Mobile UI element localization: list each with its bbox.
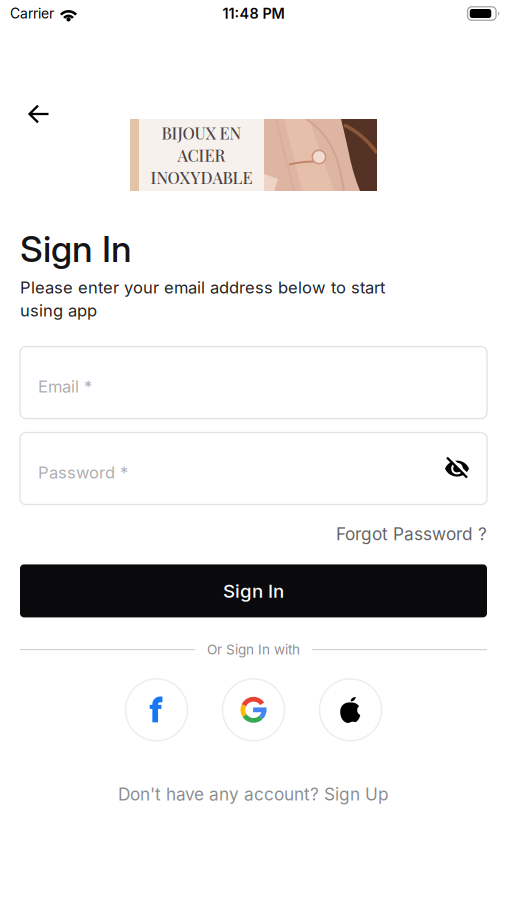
- staticText: Email *: [38, 377, 92, 397]
- staticText: Or Sign In with: [207, 641, 300, 658]
- staticText: ACIER: [177, 144, 225, 166]
- staticText: Forgot Password ?: [336, 524, 487, 544]
- staticText: Sign Up: [324, 784, 389, 805]
- staticText: using app: [20, 301, 97, 321]
- staticText: Don't have any account?: [118, 784, 324, 805]
- button[interactable]: Back: [14, 92, 63, 136]
- button[interactable]: Sign in with Apple: [319, 679, 381, 741]
- button[interactable]: Sign Up: [324, 784, 389, 805]
- button[interactable]: Show password: [443, 455, 487, 483]
- button[interactable]: Sign in with Google: [222, 679, 284, 741]
- staticText: 11:48 PM: [222, 5, 284, 22]
- staticText: BIJOUX EN: [161, 122, 241, 144]
- staticText: Please enter your email address below to…: [20, 278, 385, 298]
- staticText: Carrier: [10, 5, 54, 22]
- staticText: Sign In: [20, 227, 132, 271]
- staticText: INOXYDABLE: [150, 166, 252, 188]
- button[interactable]: Sign In: [20, 564, 487, 617]
- button[interactable]: Forgot Password ?: [336, 524, 487, 544]
- staticText: Password *: [38, 463, 128, 483]
- staticText: Sign In: [223, 580, 284, 602]
- button[interactable]: Sign in with Facebook: [125, 679, 187, 741]
